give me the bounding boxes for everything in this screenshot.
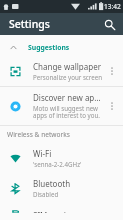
button[interactable]: Discover new apps [0,87,123,125]
staticText: Personalize your screen [33,73,103,81]
staticText: 13:42 [104,2,121,11]
staticText: Suggestions [28,43,70,52]
button[interactable]: More options [105,64,119,78]
staticText: Settings [9,17,50,31]
button[interactable]: Search [99,14,119,34]
button[interactable]: SIM cards [0,203,123,220]
staticText: 'senna-2-2.4GHz' [33,160,82,168]
staticText: Bluetooth [33,178,71,189]
button[interactable]: Bluetooth [0,173,123,203]
staticText: Wi-Fi [33,148,52,159]
staticText: Wireless & networks [7,130,70,139]
button[interactable]: More options [105,99,119,113]
button[interactable]: Suggestions [0,39,123,56]
staticText: Change wallpaper [33,61,101,72]
staticText: Disabled [33,190,59,198]
button[interactable]: Change wallpaper [0,56,123,86]
button[interactable]: Wi-Fi [0,143,123,173]
staticText: Moto will suggest new apps of interest t… [33,104,103,120]
staticText: Discover new apps [33,92,103,103]
staticText: SIM cards [33,210,70,213]
